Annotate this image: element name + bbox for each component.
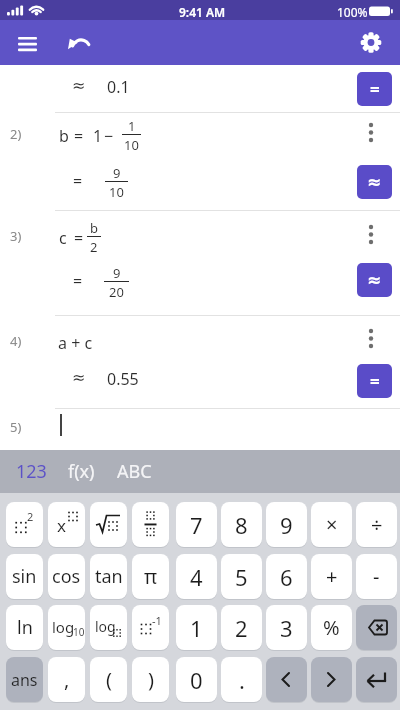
button[interactable]: . — [221, 657, 262, 702]
button[interactable]: , — [48, 657, 85, 702]
staticText: , — [64, 666, 70, 693]
staticText: 5 — [235, 562, 248, 592]
staticText: ans — [11, 669, 38, 691]
button[interactable]: ≈ — [357, 263, 392, 297]
staticText: ) — [148, 666, 154, 693]
button[interactable]: × — [311, 502, 352, 547]
button[interactable]: - — [356, 554, 397, 599]
button[interactable]: 6 — [266, 554, 307, 599]
button[interactable]: π — [132, 554, 169, 599]
staticText: − — [104, 125, 114, 147]
staticText: 123 — [16, 459, 47, 484]
button[interactable]: 8 — [221, 502, 262, 547]
button[interactable]: sin — [6, 554, 43, 599]
button[interactable]: 3 — [266, 605, 307, 650]
button[interactable]: ( — [90, 657, 127, 702]
staticText: b — [90, 219, 98, 235]
staticText: = — [73, 170, 83, 192]
staticText: 3) — [10, 227, 22, 245]
button[interactable]: 9 — [266, 502, 307, 547]
staticText: 4 — [190, 562, 203, 592]
staticText: 0.1 — [107, 76, 130, 98]
button[interactable]: ) — [132, 657, 169, 702]
staticText: tan — [95, 564, 123, 589]
staticText: b — [59, 125, 69, 147]
button[interactable] — [356, 28, 386, 58]
button[interactable]: = — [357, 364, 392, 398]
button[interactable]: 123 — [6, 450, 56, 493]
staticText: % — [323, 614, 340, 641]
button[interactable]: ÷ — [356, 502, 397, 547]
button[interactable] — [90, 502, 127, 547]
staticText: ≈ — [367, 270, 382, 290]
button[interactable]: f(x) — [56, 450, 106, 493]
staticText: × — [326, 511, 338, 538]
button[interactable]: x — [48, 502, 85, 547]
button[interactable]: 4 — [176, 554, 217, 599]
staticText: ( — [106, 666, 112, 693]
button[interactable] — [10, 29, 46, 57]
button[interactable]: = — [357, 72, 392, 106]
button[interactable]: ans — [6, 657, 43, 702]
staticText: + — [326, 563, 338, 590]
button[interactable]: 0 — [176, 657, 217, 702]
staticText: ln — [17, 615, 33, 640]
button[interactable] — [0, 113, 400, 210]
staticText: 2) — [10, 125, 22, 143]
staticText: c — [59, 227, 67, 249]
button[interactable]: ≈ — [357, 165, 392, 199]
staticText: ≈ — [72, 76, 86, 95]
button[interactable] — [362, 328, 380, 350]
staticText: = — [74, 227, 84, 249]
button[interactable] — [362, 122, 380, 144]
staticText: 1 — [128, 117, 136, 133]
staticText: . — [239, 665, 245, 695]
staticText: = — [370, 78, 380, 101]
button[interactable]: log — [48, 605, 85, 650]
staticText: = — [73, 270, 83, 292]
button[interactable] — [362, 224, 380, 246]
button[interactable]: ABC — [106, 450, 162, 493]
button[interactable]: -1 — [132, 605, 169, 650]
button[interactable]: 2 — [221, 605, 262, 650]
staticText: ≈ — [72, 368, 86, 387]
staticText: f(x) — [68, 459, 95, 484]
staticText: ≈ — [367, 172, 382, 192]
button[interactable] — [311, 657, 352, 702]
button[interactable] — [0, 409, 400, 450]
button[interactable] — [266, 657, 307, 702]
button[interactable] — [356, 657, 397, 702]
button[interactable]: ln — [6, 605, 43, 650]
button[interactable]: 5 — [221, 554, 262, 599]
staticText: π — [144, 563, 158, 590]
staticText: sin — [12, 564, 37, 589]
staticText: 3 — [280, 613, 293, 643]
staticText: 6 — [280, 562, 293, 592]
button[interactable]: 7 — [176, 502, 217, 547]
button[interactable] — [132, 502, 169, 547]
staticText: 4) — [10, 332, 22, 350]
button[interactable]: + — [311, 554, 352, 599]
button[interactable]: cos — [48, 554, 85, 599]
button[interactable] — [0, 211, 400, 315]
button[interactable] — [356, 605, 397, 650]
staticText: 5) — [10, 418, 22, 436]
staticText: 0.55 — [107, 368, 139, 390]
button[interactable]: log — [90, 605, 127, 650]
staticText: - — [373, 563, 380, 590]
staticText: ABC — [117, 459, 152, 484]
staticText: 1 — [190, 613, 203, 643]
staticText: 9 — [280, 510, 293, 540]
button[interactable] — [0, 65, 400, 112]
staticText: 9 — [113, 264, 121, 280]
staticText: log — [95, 617, 116, 636]
button[interactable]: 2 — [6, 502, 43, 547]
staticText: x — [57, 514, 66, 537]
button[interactable]: % — [311, 605, 352, 650]
button[interactable]: 1 — [176, 605, 217, 650]
button[interactable] — [0, 316, 400, 408]
button[interactable]: tan — [90, 554, 127, 599]
button[interactable] — [62, 29, 94, 57]
staticText: 2 — [235, 613, 248, 643]
staticText: log — [52, 617, 75, 637]
